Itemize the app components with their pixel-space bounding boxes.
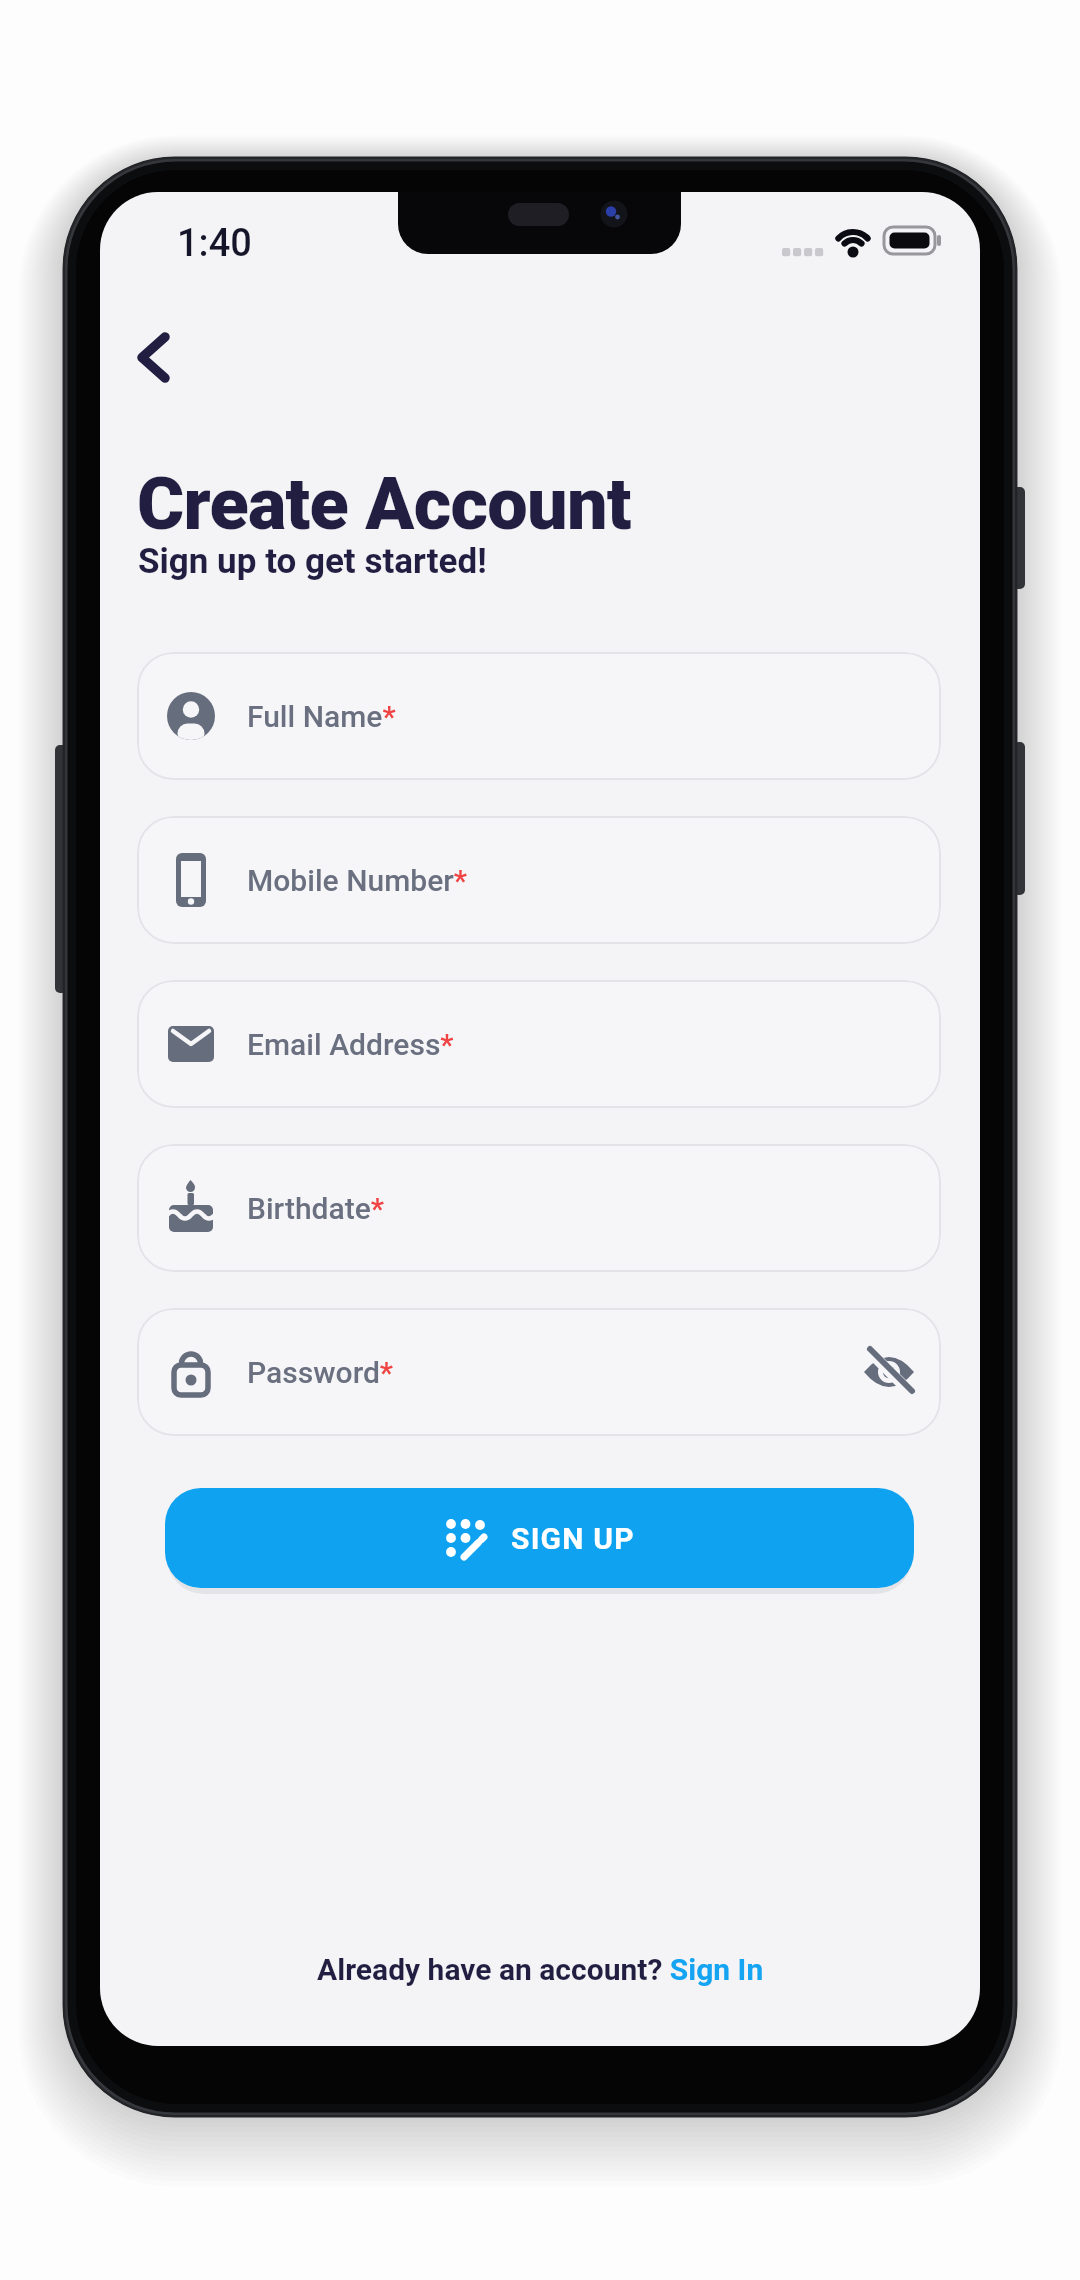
button[interactable]: Birthdate* bbox=[137, 1144, 941, 1272]
staticText: Create Account bbox=[137, 462, 631, 546]
staticText: Password* bbox=[247, 1355, 394, 1390]
staticText: Sign up to get started! bbox=[138, 541, 487, 582]
button[interactable]: SIGN UP bbox=[165, 1488, 914, 1588]
staticText: SIGN UP bbox=[511, 1521, 635, 1556]
staticText: Mobile Number* bbox=[247, 863, 468, 898]
button[interactable]: Mobile Number* bbox=[137, 816, 941, 944]
staticText: Full Name* bbox=[247, 699, 396, 734]
staticText: Email Address* bbox=[247, 1027, 454, 1062]
button[interactable]: Password* bbox=[137, 1308, 941, 1436]
button[interactable] bbox=[120, 320, 190, 396]
button[interactable]: Full Name* bbox=[137, 652, 941, 780]
staticText: 1:40 bbox=[177, 221, 252, 266]
button[interactable]: Email Address* bbox=[137, 980, 941, 1108]
staticText: Birthdate* bbox=[247, 1191, 385, 1226]
button[interactable]: Already have an account? Sign In bbox=[317, 1952, 764, 1987]
